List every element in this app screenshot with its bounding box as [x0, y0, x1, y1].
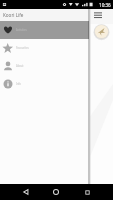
button[interactable]: Compose	[94, 24, 109, 39]
button[interactable]: Back	[18, 184, 33, 200]
button[interactable]: Favourites	[0, 39, 89, 57]
staticText: Info	[16, 82, 21, 86]
button[interactable]: Activities	[0, 21, 89, 39]
button[interactable]: Recents	[79, 184, 95, 200]
button[interactable]: Menu	[92, 9, 104, 21]
button[interactable]: About	[0, 57, 89, 75]
staticText: About	[16, 64, 24, 68]
button[interactable]: Home	[48, 184, 64, 200]
staticText: Favourites	[16, 46, 29, 50]
staticText: 10:36	[99, 2, 111, 8]
staticText: Activities	[16, 28, 27, 32]
button[interactable]: Info	[0, 75, 89, 93]
staticText: Koori Life	[3, 12, 24, 18]
